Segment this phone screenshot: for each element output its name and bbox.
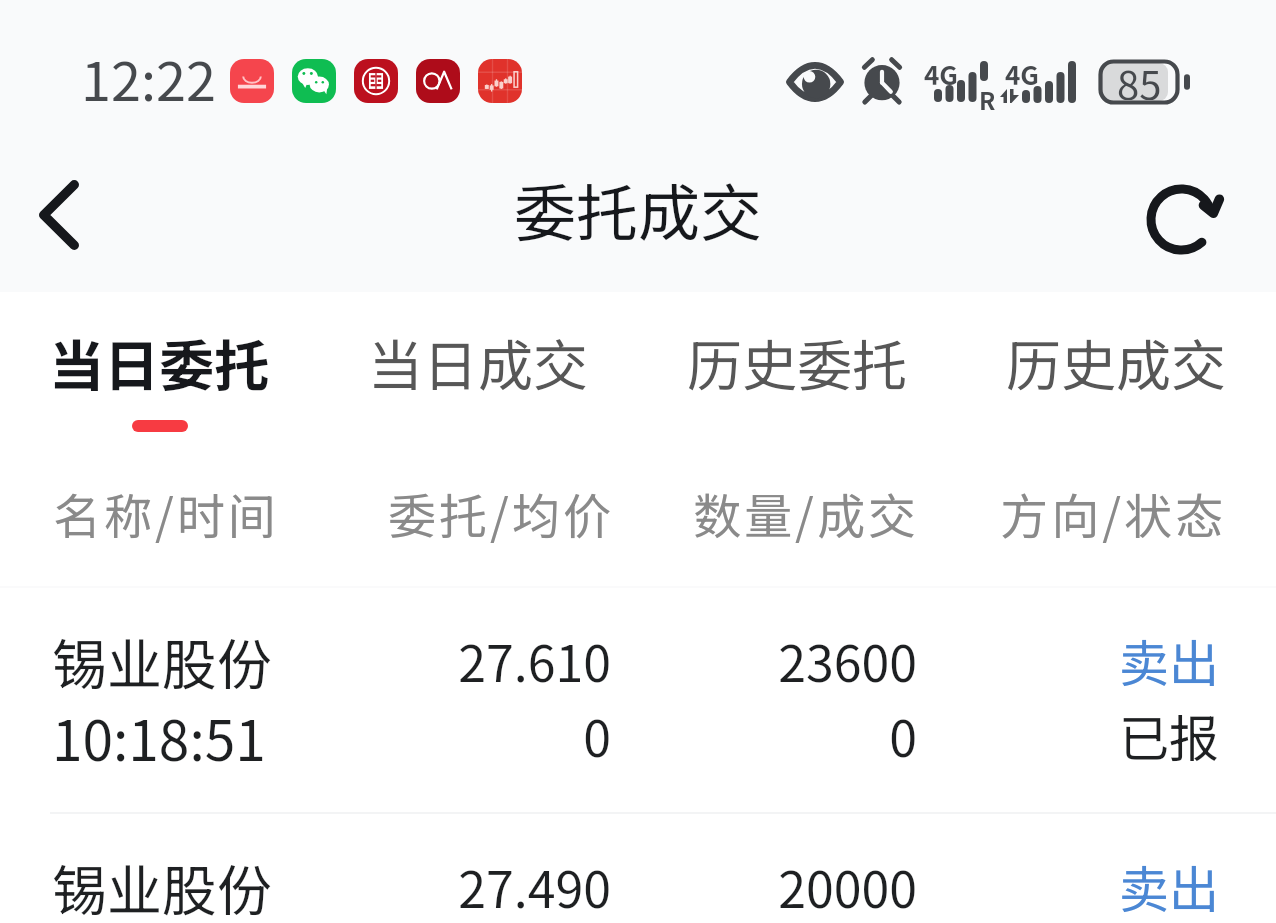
button[interactable]: Back bbox=[4, 160, 114, 270]
button[interactable]: 历史成交 bbox=[957, 292, 1276, 448]
button[interactable]: Refresh bbox=[1146, 180, 1230, 260]
staticText: 10:18:51 bbox=[52, 697, 266, 777]
staticText: 方向/状态 bbox=[0, 478, 1226, 548]
button[interactable]: 锡业股份 bbox=[0, 588, 1276, 812]
button[interactable]: 历史委托 bbox=[638, 292, 957, 448]
staticText: 名称/时间 bbox=[53, 478, 279, 548]
staticText: 数量/成交 bbox=[168, 478, 1276, 548]
staticText: 0 bbox=[0, 699, 917, 771]
staticText: 锡业股份 bbox=[52, 847, 273, 923]
staticText: 委托成交 bbox=[514, 164, 763, 254]
staticText: 历史成交 bbox=[1006, 322, 1227, 402]
staticText: 委托/均价 bbox=[0, 478, 1139, 548]
staticText: 当日委托 bbox=[49, 322, 270, 402]
staticText: 27.490 bbox=[0, 850, 611, 922]
staticText: 0 bbox=[0, 699, 611, 771]
button[interactable]: 当日委托 bbox=[0, 292, 319, 448]
staticText: 23600 bbox=[0, 624, 917, 696]
staticText: 12:22 bbox=[81, 38, 216, 116]
staticText: 卖出 bbox=[0, 850, 1219, 922]
staticText: 20000 bbox=[0, 850, 917, 922]
staticText: 4G bbox=[924, 55, 958, 93]
staticText: 4G bbox=[1005, 55, 1039, 93]
staticText: 历史委托 bbox=[687, 322, 908, 402]
button[interactable]: 锡业股份 bbox=[0, 814, 1276, 923]
staticText: 卖出 bbox=[0, 624, 1219, 696]
staticText: 已报 bbox=[0, 699, 1219, 771]
staticText: 27.610 bbox=[0, 624, 611, 696]
button[interactable]: 当日成交 bbox=[319, 292, 638, 448]
staticText: 85 bbox=[1117, 54, 1162, 100]
staticText: 当日成交 bbox=[368, 322, 589, 402]
staticText: 锡业股份 bbox=[52, 621, 273, 701]
staticText: R bbox=[979, 82, 996, 117]
